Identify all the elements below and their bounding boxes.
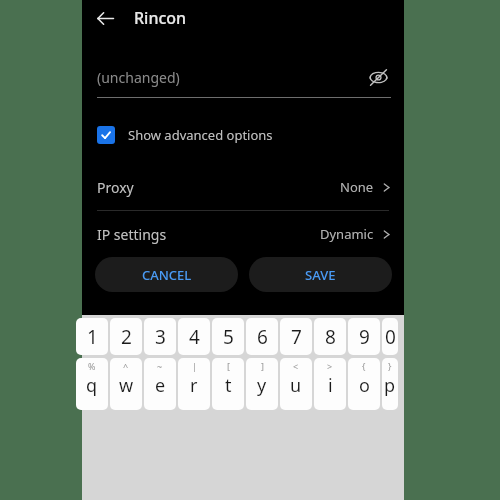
- button[interactable]: 8: [314, 318, 346, 355]
- button[interactable]: IP settings: [82, 211, 404, 257]
- staticText: p: [384, 373, 396, 398]
- staticText: 3: [155, 324, 166, 350]
- button[interactable]: 1: [76, 318, 108, 355]
- button[interactable]: ^: [110, 358, 142, 410]
- button[interactable]: 2: [110, 318, 142, 355]
- staticText: (unchanged): [97, 68, 365, 87]
- staticText: [: [227, 360, 230, 372]
- button[interactable]: [: [212, 358, 244, 410]
- staticText: <: [293, 360, 299, 372]
- staticText: |: [192, 360, 197, 372]
- staticText: i: [328, 373, 333, 398]
- staticText: 1: [87, 324, 98, 350]
- staticText: e: [155, 373, 166, 398]
- staticText: q: [86, 373, 98, 398]
- staticText: >: [327, 360, 333, 372]
- staticText: 0: [385, 324, 396, 350]
- button[interactable]: Proxy: [82, 164, 404, 210]
- button[interactable]: 3: [144, 318, 176, 355]
- staticText: ^: [123, 360, 129, 372]
- button[interactable]: Back: [90, 3, 120, 33]
- staticText: %: [88, 360, 96, 372]
- staticText: SAVE: [305, 266, 336, 284]
- staticText: 9: [359, 324, 370, 350]
- staticText: Dynamic: [320, 225, 374, 243]
- staticText: None: [340, 178, 374, 196]
- staticText: 5: [223, 324, 234, 350]
- staticText: 2: [121, 324, 132, 350]
- staticText: Show advanced options: [128, 126, 273, 144]
- staticText: {: [362, 360, 366, 372]
- button[interactable]: SAVE: [249, 257, 392, 292]
- button[interactable]: 5: [212, 318, 244, 355]
- button[interactable]: CANCEL: [95, 257, 238, 292]
- button[interactable]: |: [178, 358, 210, 410]
- staticText: 7: [291, 324, 302, 350]
- button[interactable]: Show advanced options: [82, 120, 404, 150]
- button[interactable]: 4: [178, 318, 210, 355]
- button[interactable]: 9: [348, 318, 380, 355]
- button[interactable]: }: [382, 358, 398, 410]
- staticText: 6: [257, 324, 268, 350]
- staticText: Proxy: [97, 178, 340, 197]
- staticText: IP settings: [97, 225, 320, 244]
- staticText: 8: [325, 324, 336, 350]
- staticText: }: [388, 360, 392, 372]
- staticText: ]: [261, 360, 264, 372]
- staticText: 4: [189, 324, 200, 350]
- staticText: ~: [157, 360, 163, 372]
- staticText: o: [359, 373, 370, 398]
- button[interactable]: 7: [280, 318, 312, 355]
- button[interactable]: ~: [144, 358, 176, 410]
- button[interactable]: >: [314, 358, 346, 410]
- staticText: y: [257, 373, 267, 398]
- staticText: CANCEL: [142, 266, 192, 284]
- button[interactable]: 6: [246, 318, 278, 355]
- button[interactable]: Show password: [365, 64, 391, 90]
- button[interactable]: <: [280, 358, 312, 410]
- staticText: r: [190, 373, 198, 398]
- button[interactable]: %: [76, 358, 108, 410]
- button[interactable]: 0: [382, 318, 398, 355]
- staticText: Rincon: [134, 7, 187, 29]
- staticText: w: [119, 373, 134, 398]
- button[interactable]: ]: [246, 358, 278, 410]
- staticText: u: [290, 373, 302, 398]
- staticText: t: [225, 373, 232, 398]
- button[interactable]: {: [348, 358, 380, 410]
